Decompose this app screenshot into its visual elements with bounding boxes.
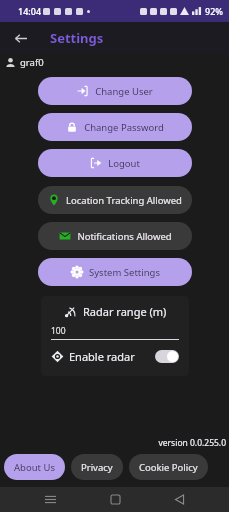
button[interactable]: Cookie Policy [129,454,208,480]
staticText: Logout [108,157,140,170]
button[interactable]: Privacy [71,454,123,480]
button[interactable]: Logout [38,149,192,177]
staticText: version 0.0.255.0 [0,437,226,449]
staticText: Settings [50,29,104,47]
button[interactable]: Home [100,487,130,512]
button[interactable]: Enable radar [51,349,179,364]
button[interactable]: Change User [38,77,192,105]
staticText: graf0 [20,56,44,69]
staticText: Privacy [81,461,113,474]
staticText: 100 [51,325,66,337]
staticText: Change User [95,85,153,98]
staticText: Enable radar [69,349,135,364]
button[interactable]: System Settings [38,258,192,286]
staticText: Change Password [84,121,164,134]
staticText: Cookie Policy [139,461,198,474]
staticText: Notifications Allowed [77,230,172,243]
button[interactable]: Recents [35,487,65,512]
button[interactable]: Location Tracking Allowed [38,186,192,214]
staticText: Location Tracking Allowed [66,194,182,207]
staticText: About Us [14,461,55,474]
staticText: Radar range (m) [83,304,167,319]
button[interactable]: Back [164,487,194,512]
staticText: 14:04 [18,5,42,17]
button[interactable]: Change Password [38,113,192,141]
button[interactable]: About Us [4,454,65,480]
button[interactable]: Notifications Allowed [38,222,192,250]
staticText: 92% [205,5,223,17]
button[interactable]: Back [8,26,32,50]
staticText: System Settings [89,266,160,279]
